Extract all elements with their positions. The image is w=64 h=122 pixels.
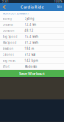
button[interactable]: Elevation <box>0 46 64 52</box>
staticText: WORKOUT SUMMARY <box>2 12 29 15</box>
staticText: Calories <box>2 53 13 56</box>
staticText: Save Workout <box>19 71 45 76</box>
staticText: 100% <box>54 0 62 3</box>
button[interactable]: Save Workout <box>0 70 64 77</box>
staticText: Edit <box>57 5 62 9</box>
staticText: Distance <box>2 23 13 26</box>
staticText: 31.2 km/h <box>24 41 38 44</box>
staticText: 142 bpm <box>24 59 37 62</box>
button[interactable]: Activity <box>0 16 64 22</box>
staticText: Max Speed <box>2 41 16 44</box>
staticText: Avg Heart <box>2 59 15 62</box>
staticText: Avg Speed <box>2 35 17 38</box>
staticText: Elevation <box>2 47 13 50</box>
staticText: 48:12 <box>24 29 33 32</box>
staticText: 612 kcal <box>24 53 35 56</box>
button[interactable]: Distance <box>0 22 64 28</box>
staticText: Duration <box>2 29 14 32</box>
staticText: 184 m <box>24 47 33 50</box>
button[interactable]: Effort <box>0 64 64 70</box>
staticText: 15.4 km/h <box>24 35 38 38</box>
staticText: 9:41 <box>2 0 9 3</box>
staticText: 12.4 km <box>24 23 35 26</box>
button[interactable]: Max Speed <box>0 40 64 46</box>
button[interactable]: Edit <box>56 3 63 11</box>
staticText: Moderate <box>24 65 37 68</box>
staticText: Cardio Ride <box>20 4 43 10</box>
staticText: Effort <box>2 65 9 68</box>
button[interactable]: Avg Speed <box>0 34 64 40</box>
staticText: Cycling <box>24 17 34 20</box>
button[interactable]: Avg Heart <box>0 58 64 64</box>
button[interactable]: Calories <box>0 52 64 58</box>
button[interactable]: Back <box>1 3 8 11</box>
button[interactable]: Duration <box>0 28 64 34</box>
staticText: Activity <box>2 17 11 20</box>
